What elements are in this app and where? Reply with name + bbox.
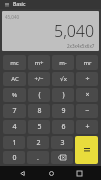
staticText: m- [59,59,67,67]
button[interactable]: . [27,151,49,164]
button[interactable]: 7 [3,104,26,118]
button[interactable]: mc [3,55,26,70]
staticText: ÷ [85,74,90,84]
staticText: . [37,153,39,163]
staticText: mc [10,59,19,67]
button[interactable]: mr [76,55,98,70]
staticText: mr [83,59,92,67]
staticText: 45,040 [5,14,20,20]
button[interactable]: ) [52,88,74,102]
staticText: 3 [60,138,65,148]
button[interactable]: 3 [51,136,73,149]
button[interactable]: × [76,88,98,102]
staticText: ( [38,90,41,100]
button[interactable]: Delete [51,151,73,164]
staticText: 0 [12,153,17,163]
button[interactable]: % [3,88,26,102]
button[interactable]: m- [52,55,74,70]
staticText: − [85,106,90,116]
staticText: AC [11,75,19,83]
button[interactable]: + [76,120,98,134]
button[interactable]: 6 [52,120,74,134]
staticText: ) [62,90,65,100]
button[interactable]: 2 [27,136,49,149]
button[interactable]: − [76,104,98,118]
button[interactable]: m+ [28,55,50,70]
button[interactable]: 1 [3,136,25,149]
staticText: 4 [12,122,17,132]
staticText: 6 [61,122,66,132]
staticText: 8 [37,106,42,116]
button[interactable]: 5 [28,120,50,134]
button[interactable]: Back [16,167,28,179]
button[interactable]: Home [45,167,57,179]
staticText: + [85,122,90,132]
button[interactable]: Recents [73,167,85,179]
staticText: Basic [13,1,26,8]
button[interactable]: 4 [3,120,26,134]
staticText: 2 [36,138,41,148]
staticText: 1 [12,138,17,148]
button[interactable]: Menu [3,1,10,8]
button[interactable]: ( [28,88,50,102]
button[interactable]: AC [3,72,26,86]
button[interactable]: +/− [28,72,50,86]
staticText: m+ [34,59,44,67]
staticText: √x [60,75,67,83]
staticText: +/− [34,75,44,83]
staticText: × [85,90,90,100]
button[interactable]: Equals [75,136,98,164]
staticText: 2x3x4x5x6x7 [67,43,95,49]
staticText: 5,040 [54,20,95,42]
button[interactable]: √x [52,72,74,86]
staticText: 9 [61,106,66,116]
button[interactable]: ÷ [76,72,98,86]
button[interactable]: 0 [3,151,25,164]
button[interactable]: 9 [52,104,74,118]
staticText: 7 [12,106,17,116]
staticText: 5 [37,122,42,132]
staticText: % [12,91,17,99]
button[interactable]: 8 [28,104,50,118]
